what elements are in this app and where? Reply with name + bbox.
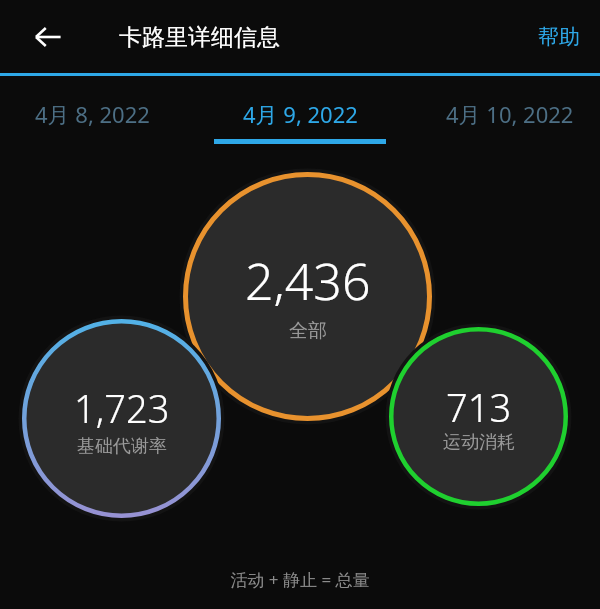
- staticText: 卡路里详细信息: [119, 23, 280, 52]
- button[interactable]: 基础代谢率 1,723 卡路里: [14, 311, 229, 526]
- button[interactable]: 运动消耗 713 卡路里: [381, 319, 576, 514]
- staticText: 2,436: [245, 247, 371, 315]
- staticText: 4月 9, 2022: [243, 99, 358, 129]
- staticText: 活动 + 静止 = 总量: [0, 568, 600, 591]
- staticText: 基础代谢率: [77, 435, 167, 458]
- button[interactable]: 4月 10, 2022: [410, 76, 600, 138]
- staticText: 1,723: [74, 382, 170, 434]
- button[interactable]: Back: [22, 11, 74, 63]
- staticText: 4月 10, 2022: [446, 99, 574, 129]
- staticText: 全部: [289, 319, 327, 343]
- button[interactable]: 4月 8, 2022: [0, 76, 192, 138]
- staticText: 713: [446, 381, 512, 433]
- staticText: 运动消耗: [443, 431, 515, 454]
- button[interactable]: 全部 2,436 卡路里: [175, 164, 440, 429]
- staticText: 4月 8, 2022: [35, 99, 150, 129]
- button[interactable]: 帮助: [518, 10, 600, 64]
- staticText: 帮助: [538, 24, 580, 50]
- button[interactable]: 4月 9, 2022: [200, 76, 400, 111]
